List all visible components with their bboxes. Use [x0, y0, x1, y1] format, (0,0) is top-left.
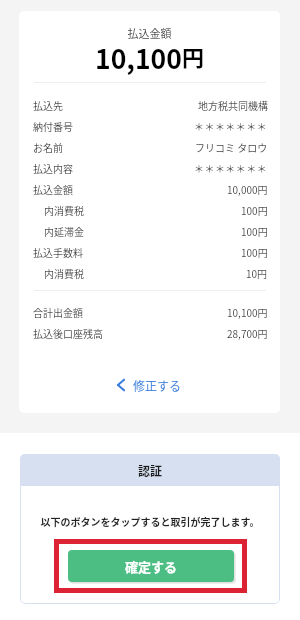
staticText: 払込手数料: [33, 245, 83, 259]
button[interactable]: 確定する: [68, 550, 234, 582]
staticText: 100円: [241, 245, 268, 259]
staticText: 修正する: [133, 377, 182, 394]
staticText: ＊＊＊＊＊＊＊: [194, 161, 268, 175]
staticText: 払込後口座残高: [33, 326, 103, 340]
staticText: 払込先: [33, 98, 63, 112]
staticText: 認証: [138, 462, 163, 479]
staticText: 円: [182, 40, 205, 72]
staticText: 以下のボタンをタップすると取引が完了します。: [20, 514, 280, 528]
staticText: ＊＊＊＊＊＊＊: [194, 119, 268, 133]
staticText: 内延滞金: [44, 224, 84, 238]
staticText: 100円: [241, 203, 268, 217]
staticText: 払込金額: [19, 25, 280, 41]
staticText: 10円: [246, 266, 268, 280]
staticText: 内消費税: [44, 266, 84, 280]
staticText: 10,100円: [227, 305, 268, 319]
staticText: 10,100: [95, 38, 182, 76]
staticText: お名前: [33, 140, 63, 154]
button[interactable]: 修正する: [19, 365, 280, 405]
staticText: 合計出金額: [33, 305, 83, 319]
staticText: 払込内容: [33, 161, 73, 175]
staticText: 100円: [241, 224, 268, 238]
staticText: 28,700円: [227, 326, 268, 340]
staticText: フリコミ タロウ: [195, 140, 268, 154]
staticText: 内消費税: [44, 203, 84, 217]
staticText: 地方税共同機構: [198, 98, 268, 112]
staticText: 納付番号: [33, 119, 73, 133]
staticText: 払込金額: [33, 182, 73, 196]
staticText: 確定する: [125, 557, 178, 576]
staticText: 10,000円: [227, 182, 268, 196]
